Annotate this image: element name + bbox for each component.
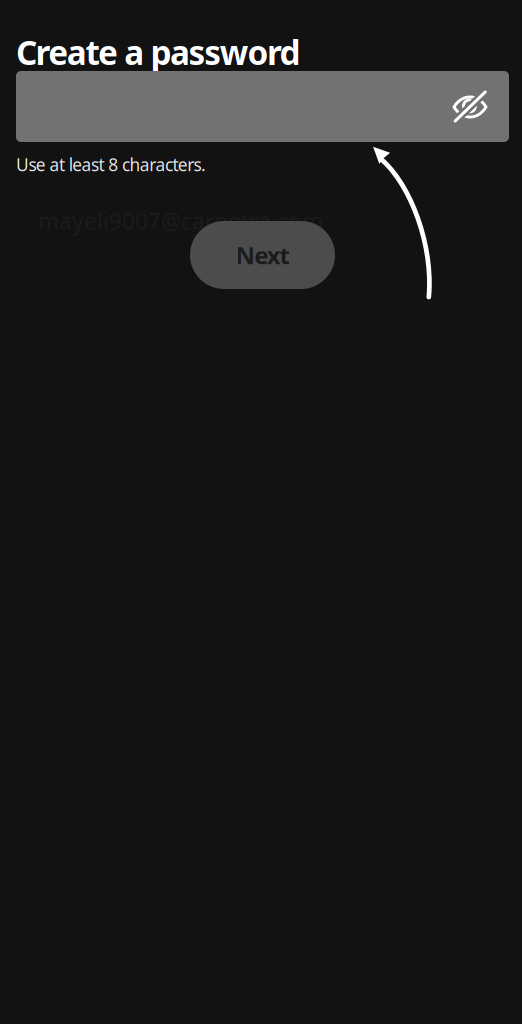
button[interactable]: Password — [16, 71, 509, 142]
button[interactable]: Show password — [443, 71, 497, 142]
button[interactable]: Next — [190, 221, 335, 289]
staticText: mayeli9007@carpetra.com — [38, 206, 323, 236]
staticText: Create a password — [16, 30, 301, 74]
staticText: Next — [236, 239, 289, 271]
staticText: Use at least 8 characters. — [16, 153, 206, 176]
